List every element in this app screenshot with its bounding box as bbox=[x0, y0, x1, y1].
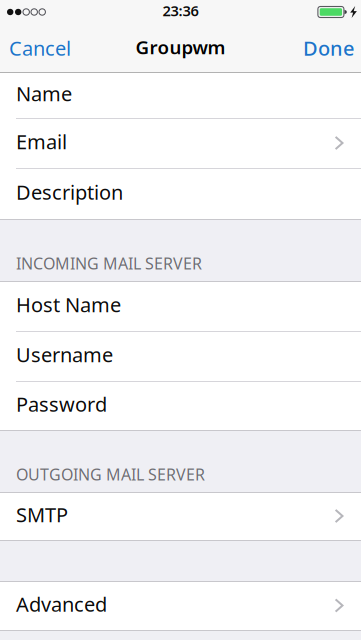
staticText: Cancel bbox=[9, 35, 71, 61]
staticText: Name bbox=[16, 80, 72, 107]
button[interactable]: Done bbox=[293, 24, 361, 71]
button[interactable]: SMTP bbox=[0, 493, 361, 540]
button[interactable]: Email bbox=[0, 119, 361, 169]
staticText: Username bbox=[16, 341, 113, 368]
staticText: Host Name bbox=[16, 291, 121, 318]
staticText: Description bbox=[16, 179, 123, 205]
button[interactable]: Host Name bbox=[0, 282, 361, 332]
button[interactable]: Username bbox=[0, 332, 361, 382]
staticText: Done bbox=[303, 35, 354, 61]
staticText: Groupwm bbox=[135, 35, 225, 59]
staticText: OUTGOING MAIL SERVER bbox=[16, 464, 205, 485]
button[interactable]: Description bbox=[0, 169, 361, 219]
button[interactable]: Password bbox=[0, 382, 361, 430]
staticText: INCOMING MAIL SERVER bbox=[16, 253, 202, 274]
staticText: Password bbox=[16, 391, 107, 417]
button[interactable]: Advanced bbox=[0, 582, 361, 630]
staticText: Email bbox=[16, 128, 67, 155]
staticText: 23:36 bbox=[162, 1, 198, 20]
button[interactable]: Cancel bbox=[0, 24, 81, 71]
button[interactable]: Name bbox=[0, 73, 361, 119]
staticText: SMTP bbox=[16, 501, 68, 528]
staticText: Advanced bbox=[16, 591, 107, 617]
